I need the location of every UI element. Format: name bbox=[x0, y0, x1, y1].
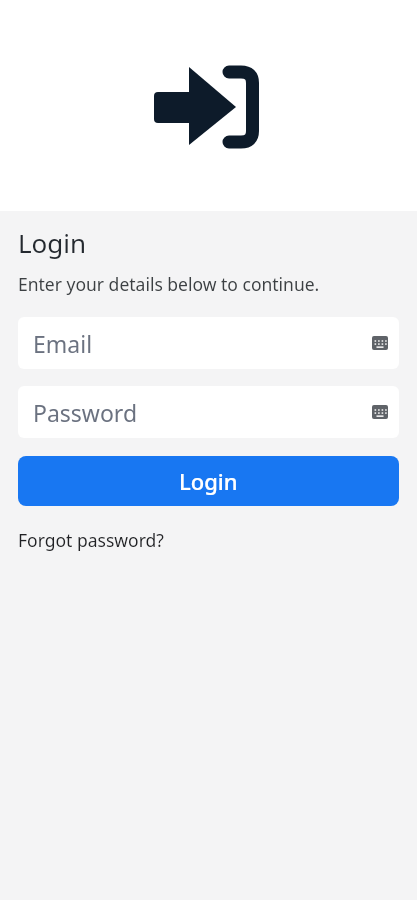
button[interactable]: Email bbox=[18, 317, 399, 369]
staticText: Password bbox=[33, 397, 138, 428]
staticText: Login bbox=[18, 225, 87, 260]
staticText: Enter your details below to continue. bbox=[18, 272, 320, 296]
button[interactable]: Login bbox=[18, 456, 399, 506]
button[interactable]: Password bbox=[18, 386, 399, 438]
staticText: Login bbox=[179, 466, 238, 496]
button[interactable]: Forgot password? bbox=[18, 528, 164, 552]
staticText: Email bbox=[33, 328, 93, 359]
